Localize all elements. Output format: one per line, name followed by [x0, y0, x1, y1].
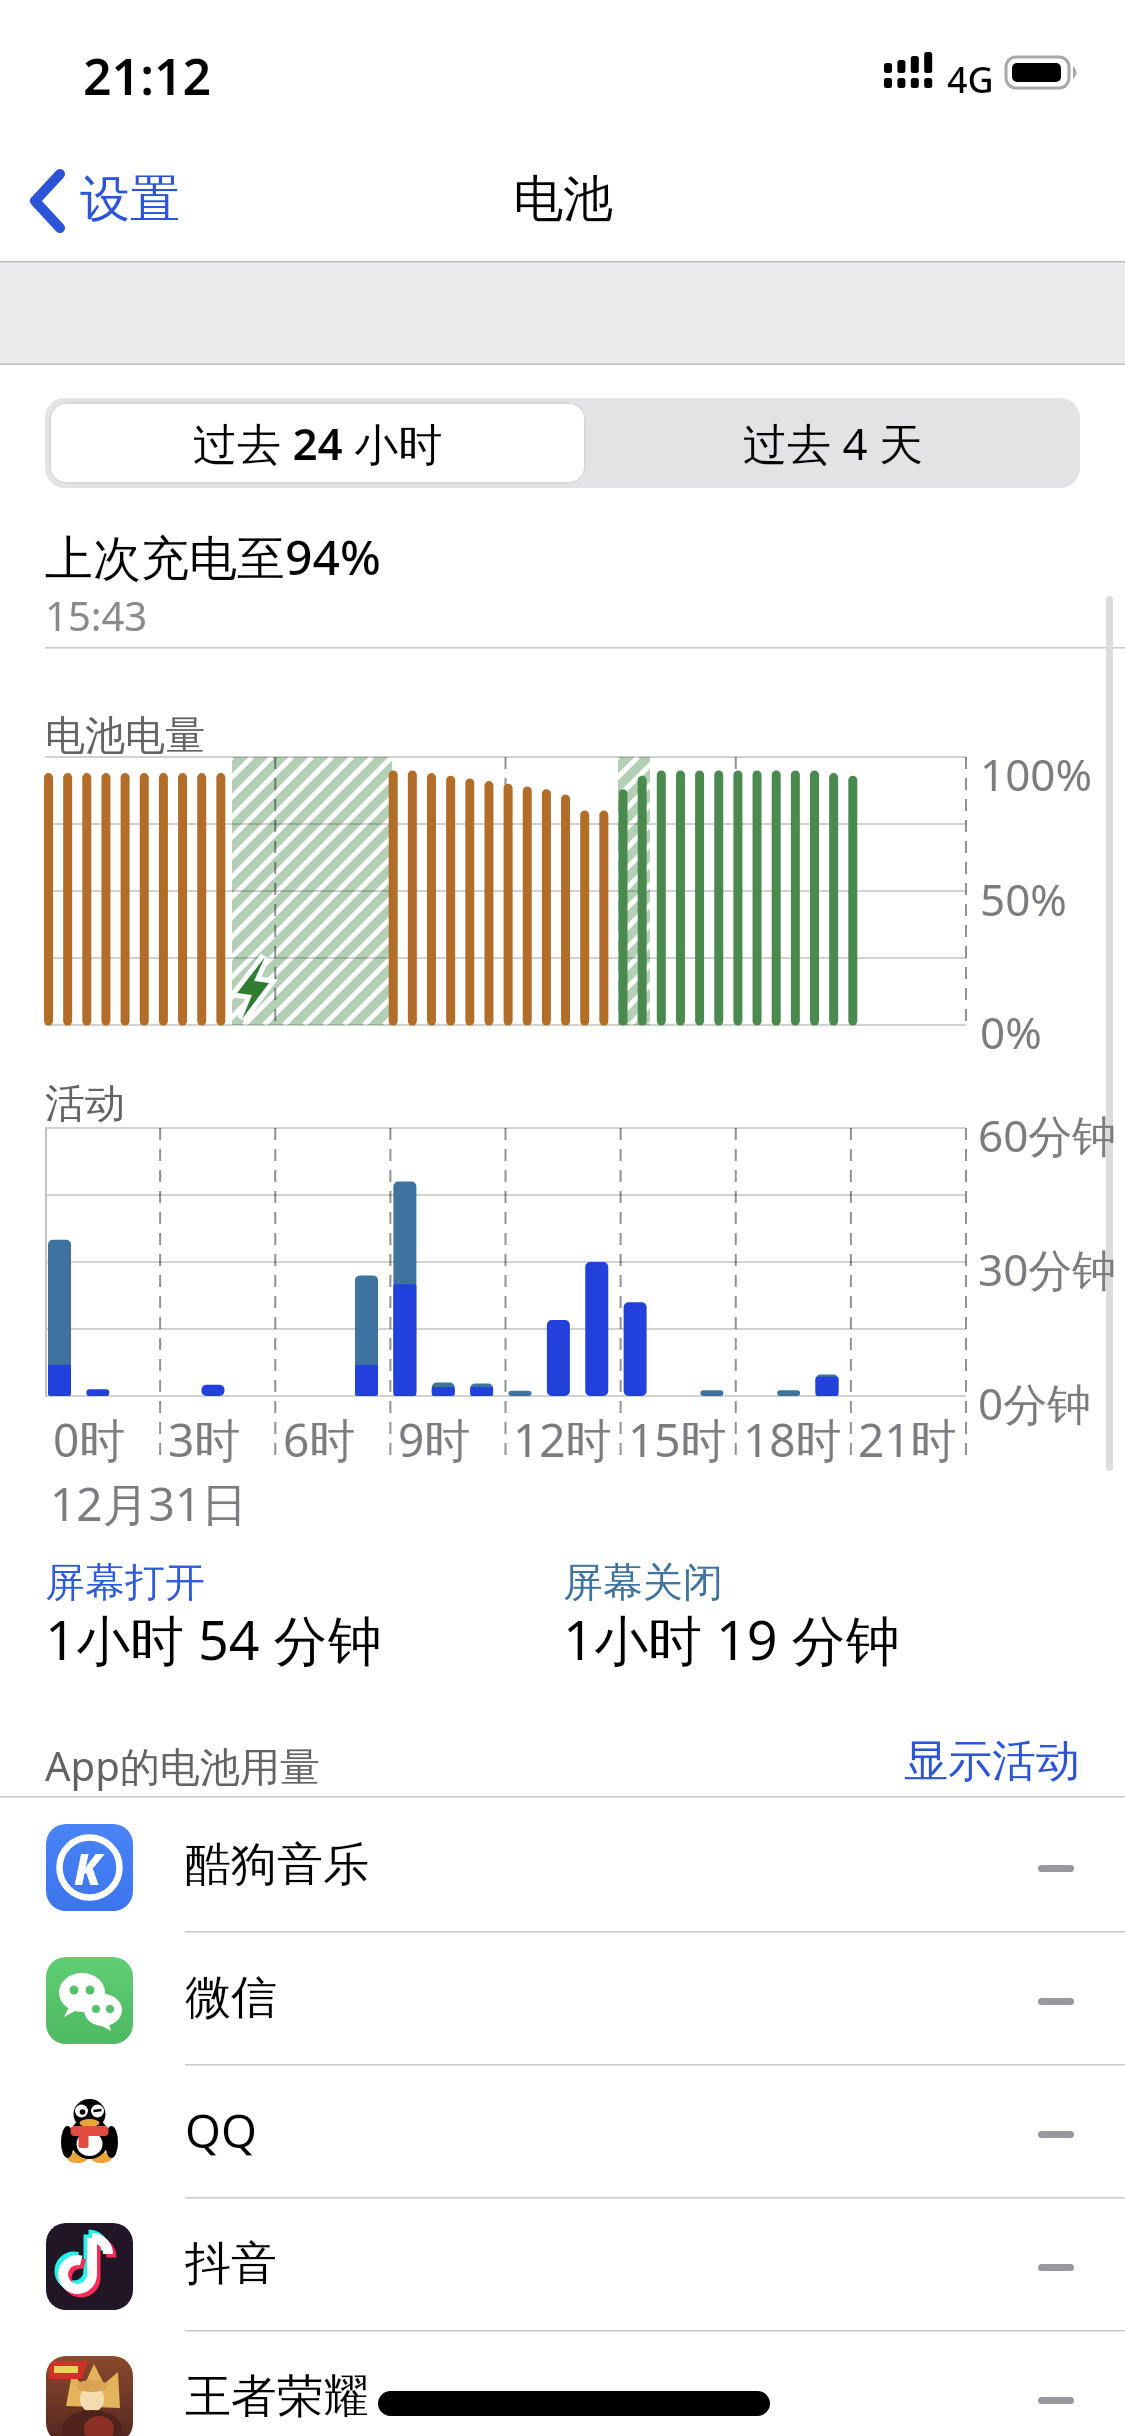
staticText: 12时 [513, 1408, 612, 1471]
staticText: 过去 24 小时 [193, 413, 443, 473]
button[interactable]: 抖音 [0, 2197, 1125, 2330]
staticText: 0时 [53, 1408, 126, 1471]
staticText: 4G [947, 55, 994, 104]
staticText: 设置 [80, 168, 180, 231]
staticText: 0分钟 [978, 1373, 1092, 1433]
staticText: 1小时 19 分钟 [563, 1602, 900, 1676]
staticText: 酷狗音乐 [185, 1836, 369, 1894]
staticText: App的电池用量 [45, 1738, 320, 1793]
staticText: 显示活动 [904, 1734, 1080, 1789]
staticText: 15时 [628, 1408, 727, 1471]
button[interactable]: 过去 24 小时 [49, 402, 586, 484]
button[interactable]: 设置 [25, 160, 225, 240]
staticText: 活动 [45, 1078, 125, 1128]
staticText: 6时 [283, 1408, 356, 1471]
staticText: 21时 [858, 1408, 957, 1471]
staticText: 15:43 [45, 588, 148, 642]
staticText: 3时 [168, 1408, 241, 1471]
staticText: QQ [185, 2099, 257, 2162]
staticText: 21:12 [83, 42, 212, 110]
staticText: 12月31日 [50, 1472, 248, 1535]
staticText: 微信 [185, 1969, 277, 2027]
staticText: 抖音 [185, 2235, 277, 2293]
staticText: 电池电量 [45, 710, 205, 760]
staticText: 18时 [743, 1408, 842, 1471]
staticText: 100% [980, 744, 1093, 804]
staticText: 屏幕关闭 [563, 1557, 723, 1607]
button[interactable]: K [0, 1798, 1125, 1931]
staticText: 50% [980, 869, 1067, 929]
button[interactable]: 过去 4 天 [586, 398, 1080, 488]
button[interactable]: 王者荣耀 [0, 2330, 1125, 2436]
staticText: 0% [980, 1002, 1042, 1062]
staticText: 上次充电至94% [45, 524, 381, 590]
button[interactable]: 微信 [0, 1931, 1125, 2064]
staticText: 屏幕打开 [45, 1557, 205, 1607]
staticText: 9时 [398, 1408, 471, 1471]
button[interactable]: 显示活动 [700, 1734, 1080, 1790]
staticText: 60分钟 [978, 1105, 1117, 1165]
staticText: 30分钟 [978, 1239, 1117, 1299]
button[interactable]: QQ [0, 2064, 1125, 2197]
staticText: 过去 4 天 [743, 413, 924, 473]
staticText: K [74, 1840, 101, 1897]
staticText: 电池 [513, 168, 613, 231]
staticText: 王者荣耀 [185, 2368, 369, 2426]
staticText: 1小时 54 分钟 [45, 1602, 382, 1676]
